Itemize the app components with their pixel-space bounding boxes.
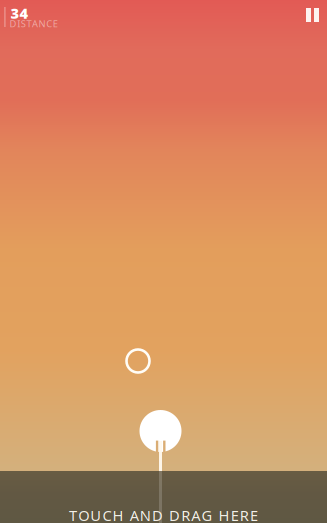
staticText: 34 bbox=[11, 3, 29, 23]
button[interactable]: Pause bbox=[298, 0, 327, 30]
staticText: DISTANCE bbox=[10, 17, 58, 30]
staticText: TOUCH AND DRAG HERE bbox=[69, 505, 258, 523]
